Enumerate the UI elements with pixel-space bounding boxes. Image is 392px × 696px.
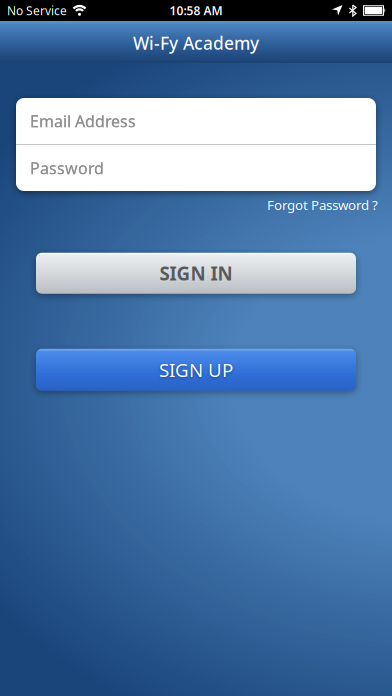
- staticText: No Service: [7, 2, 67, 18]
- staticText: Forgot Password ?: [267, 196, 378, 214]
- staticText: Wi-Fy Academy: [133, 31, 259, 54]
- textField[interactable]: Email Address: [30, 110, 376, 132]
- button[interactable]: SIGN UP: [36, 349, 356, 391]
- staticText: SIGN IN: [159, 261, 232, 286]
- staticText: Password: [30, 157, 104, 179]
- secureTextField[interactable]: Password: [30, 157, 376, 179]
- button[interactable]: Forgot Password ?: [267, 191, 392, 214]
- staticText: Email Address: [30, 110, 136, 132]
- staticText: 10:58 AM: [169, 2, 222, 18]
- button[interactable]: SIGN IN: [36, 253, 356, 294]
- staticText: Password: [30, 157, 104, 179]
- staticText: Email Address: [30, 110, 136, 132]
- staticText: SIGN UP: [159, 357, 233, 382]
